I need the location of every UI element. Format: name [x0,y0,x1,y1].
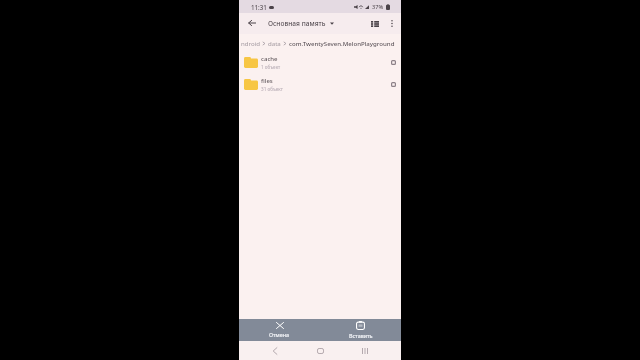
staticText: 11:31 [251,3,267,11]
button[interactable]: Назад [263,341,287,360]
staticText: 31 объект [261,86,283,92]
staticText: 1 объект [261,64,281,70]
button[interactable]: Вид списком [367,13,383,34]
staticText: Вставить [349,332,373,339]
staticText: cache [261,55,278,63]
button[interactable]: Вставить [320,319,401,341]
button[interactable]: Недавние приложения [353,341,377,360]
staticText: Основная память [268,19,326,28]
button[interactable]: Выбрать [386,55,400,69]
staticText: com.TwentySeven.MelonPlayground [289,39,395,47]
button[interactable]: Назад [239,13,264,34]
button[interactable]: Ещё [384,13,400,34]
button[interactable]: Главный экран [308,341,332,360]
button[interactable]: Выбрать [386,77,400,91]
staticText: files [261,77,273,85]
staticText: ndroid [241,39,260,47]
button[interactable]: ndroid [241,39,395,47]
button[interactable]: Отмена [239,319,320,341]
button[interactable]: cache [239,51,401,73]
staticText: Отмена [269,331,290,338]
staticText: 37% [372,3,384,11]
button[interactable]: files [239,73,401,95]
staticText: data [268,39,281,47]
button[interactable]: Основная память [268,17,334,30]
